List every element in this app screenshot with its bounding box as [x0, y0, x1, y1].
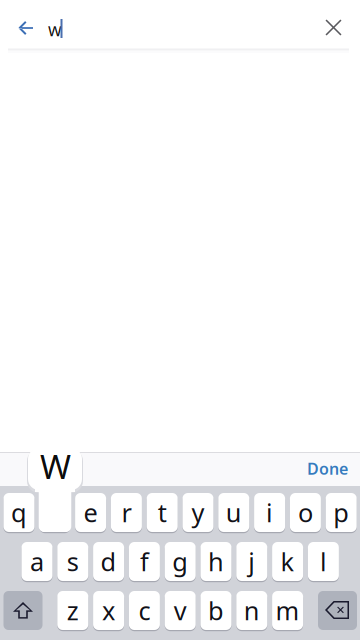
staticText: r [121, 496, 131, 529]
staticText: x [102, 594, 115, 627]
button[interactable]: q [3, 493, 34, 532]
staticText: t [158, 496, 167, 529]
staticText: Done [307, 458, 348, 479]
button[interactable]: h [200, 542, 231, 581]
button[interactable]: r [111, 493, 142, 532]
staticText: z [67, 594, 79, 627]
staticText: d [101, 545, 117, 578]
staticText: p [333, 496, 349, 529]
staticText: y [191, 496, 204, 529]
button[interactable]: n [236, 591, 267, 630]
button[interactable]: y [182, 493, 213, 532]
staticText: k [281, 545, 295, 578]
button[interactable]: x [93, 591, 124, 630]
button[interactable]: Close [312, 6, 356, 50]
staticText: s [67, 545, 79, 578]
button[interactable]: c [129, 591, 160, 630]
staticText: i [266, 496, 273, 529]
button[interactable]: l [308, 542, 339, 581]
button[interactable]: i [254, 493, 285, 532]
staticText: e [84, 496, 98, 529]
staticText: q [11, 496, 27, 529]
staticText: o [298, 496, 313, 529]
button[interactable]: d [93, 542, 124, 581]
button[interactable]: p [326, 493, 357, 532]
staticText: m [276, 594, 300, 627]
button[interactable]: o [290, 493, 321, 532]
staticText: v [174, 594, 187, 627]
button[interactable]: s [57, 542, 88, 581]
staticText: f [140, 545, 149, 578]
button[interactable]: Done [299, 453, 355, 483]
staticText: b [208, 594, 224, 627]
button[interactable]: w [39, 493, 70, 532]
button[interactable]: k [272, 542, 303, 581]
staticText: g [172, 545, 188, 578]
button[interactable]: Shift [3, 591, 42, 630]
button[interactable]: t [147, 493, 178, 532]
button[interactable]: e [75, 493, 106, 532]
button[interactable]: z [57, 591, 88, 630]
button[interactable]: f [129, 542, 160, 581]
staticText: l [320, 545, 327, 578]
staticText: j [248, 545, 255, 578]
staticText: W [40, 444, 71, 488]
staticText: c [138, 594, 150, 627]
staticText: a [30, 545, 44, 578]
button[interactable]: u [218, 493, 249, 532]
button[interactable]: a [21, 542, 52, 581]
button[interactable]: Back [4, 6, 48, 50]
staticText: n [244, 594, 260, 627]
staticText: h [208, 545, 224, 578]
button[interactable]: g [165, 542, 196, 581]
staticText: u [226, 496, 242, 529]
button[interactable]: m [272, 591, 303, 630]
button[interactable]: Delete [318, 591, 357, 630]
staticText: w [48, 18, 62, 41]
button[interactable]: j [236, 542, 267, 581]
button[interactable]: b [200, 591, 231, 630]
button[interactable]: v [165, 591, 196, 630]
